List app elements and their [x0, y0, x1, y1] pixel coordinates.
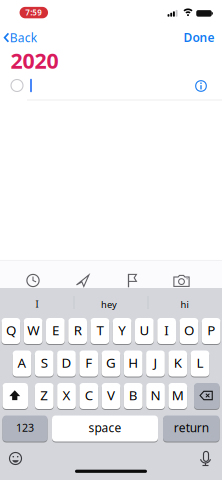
staticText: R: [74, 321, 82, 339]
staticText: B: [129, 386, 138, 404]
staticText: F: [85, 354, 92, 371]
staticText: M: [172, 386, 184, 404]
staticText: P: [207, 321, 215, 339]
staticText: Q: [6, 321, 16, 339]
staticText: 2020: [10, 46, 58, 75]
staticText: L: [196, 354, 203, 371]
staticText: hi: [180, 298, 188, 311]
staticText: I: [164, 321, 169, 339]
staticText: U: [139, 321, 149, 339]
staticText: A: [17, 354, 26, 371]
staticText: G: [106, 354, 116, 371]
staticText: Back: [10, 30, 37, 46]
staticText: D: [61, 354, 71, 371]
staticText: J: [153, 354, 157, 371]
staticText: space: [88, 419, 121, 435]
staticText: O: [184, 321, 194, 339]
staticText: K: [174, 354, 182, 371]
staticText: T: [96, 321, 103, 339]
staticText: H: [128, 354, 138, 371]
staticText: E: [52, 321, 59, 339]
staticText: X: [62, 386, 70, 404]
staticText: Done: [183, 29, 214, 45]
staticText: hey: [101, 298, 117, 311]
staticText: 123: [16, 420, 34, 435]
staticText: V: [107, 386, 115, 404]
staticText: N: [150, 386, 160, 404]
staticText: Y: [118, 321, 126, 339]
staticText: I: [35, 298, 38, 310]
staticText: S: [41, 354, 48, 371]
staticText: W: [27, 321, 39, 339]
staticText: 7:59: [25, 7, 42, 18]
staticText: Z: [40, 386, 48, 404]
staticText: C: [85, 386, 93, 404]
staticText: return: [174, 419, 209, 435]
